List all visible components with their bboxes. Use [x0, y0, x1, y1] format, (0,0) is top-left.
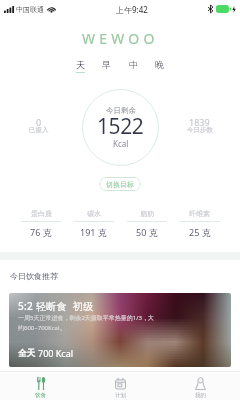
staticText: 晚 [155, 59, 164, 70]
staticText: 700 Kcal [38, 347, 74, 359]
button[interactable]: 我的 [160, 377, 240, 399]
staticText: 纤维素 [189, 209, 210, 218]
button[interactable]: 5:2 轻断食 初级 [9, 293, 231, 367]
staticText: 我的 [195, 392, 206, 399]
staticText: 今日饮食推荐 [10, 271, 58, 281]
button[interactable]: 切换目标 [99, 177, 141, 191]
staticText: 今日步数 [187, 126, 213, 134]
staticText: 早 [102, 59, 111, 70]
staticText: 计划 [115, 392, 126, 399]
staticText: 上午9:42 [116, 4, 148, 15]
staticText: 脂肪 [140, 209, 154, 218]
staticText: 饮食 [35, 392, 46, 399]
staticText: 5:2 轻断食 初级 [18, 299, 94, 313]
staticText: 切换目标 [106, 180, 134, 189]
staticText: 50 克 [136, 226, 158, 238]
staticText: 今日剩余 [106, 106, 136, 115]
button[interactable]: 天 [74, 59, 87, 73]
staticText: 碳水 [87, 209, 101, 218]
staticText: 25 克 [189, 226, 211, 238]
staticText: 天 [76, 59, 85, 70]
button[interactable]: 晚 [153, 59, 166, 73]
staticText: 中 [129, 59, 138, 70]
staticText: 中国联通 [16, 5, 44, 14]
button[interactable]: 计划 [80, 377, 160, 399]
button[interactable]: 饮食 [0, 377, 80, 399]
staticText: 已摄入 [29, 126, 49, 134]
staticText: 蛋白质 [31, 209, 52, 218]
button[interactable]: 中 [127, 59, 140, 73]
button[interactable]: 早 [100, 59, 113, 73]
staticText: 191 克 [80, 226, 107, 238]
staticText: 0 [36, 116, 42, 128]
staticText: WEWOO [82, 29, 159, 48]
staticText: 1522 [97, 112, 144, 141]
staticText: 76 克 [30, 226, 52, 238]
staticText: 一周5天正常进食，剩余2天摄取平常热量的1/3，大 约600~700Kcal。 [18, 314, 154, 332]
staticText: Kcal [113, 138, 129, 149]
staticText: 1839 [189, 116, 210, 128]
staticText: 全天 [18, 348, 35, 359]
